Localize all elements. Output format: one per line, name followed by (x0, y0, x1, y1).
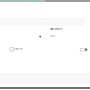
staticText: Inactive (14, 48, 22, 50)
staticText: Admin (50, 35, 55, 37)
staticText: User Profile (50, 28, 62, 30)
